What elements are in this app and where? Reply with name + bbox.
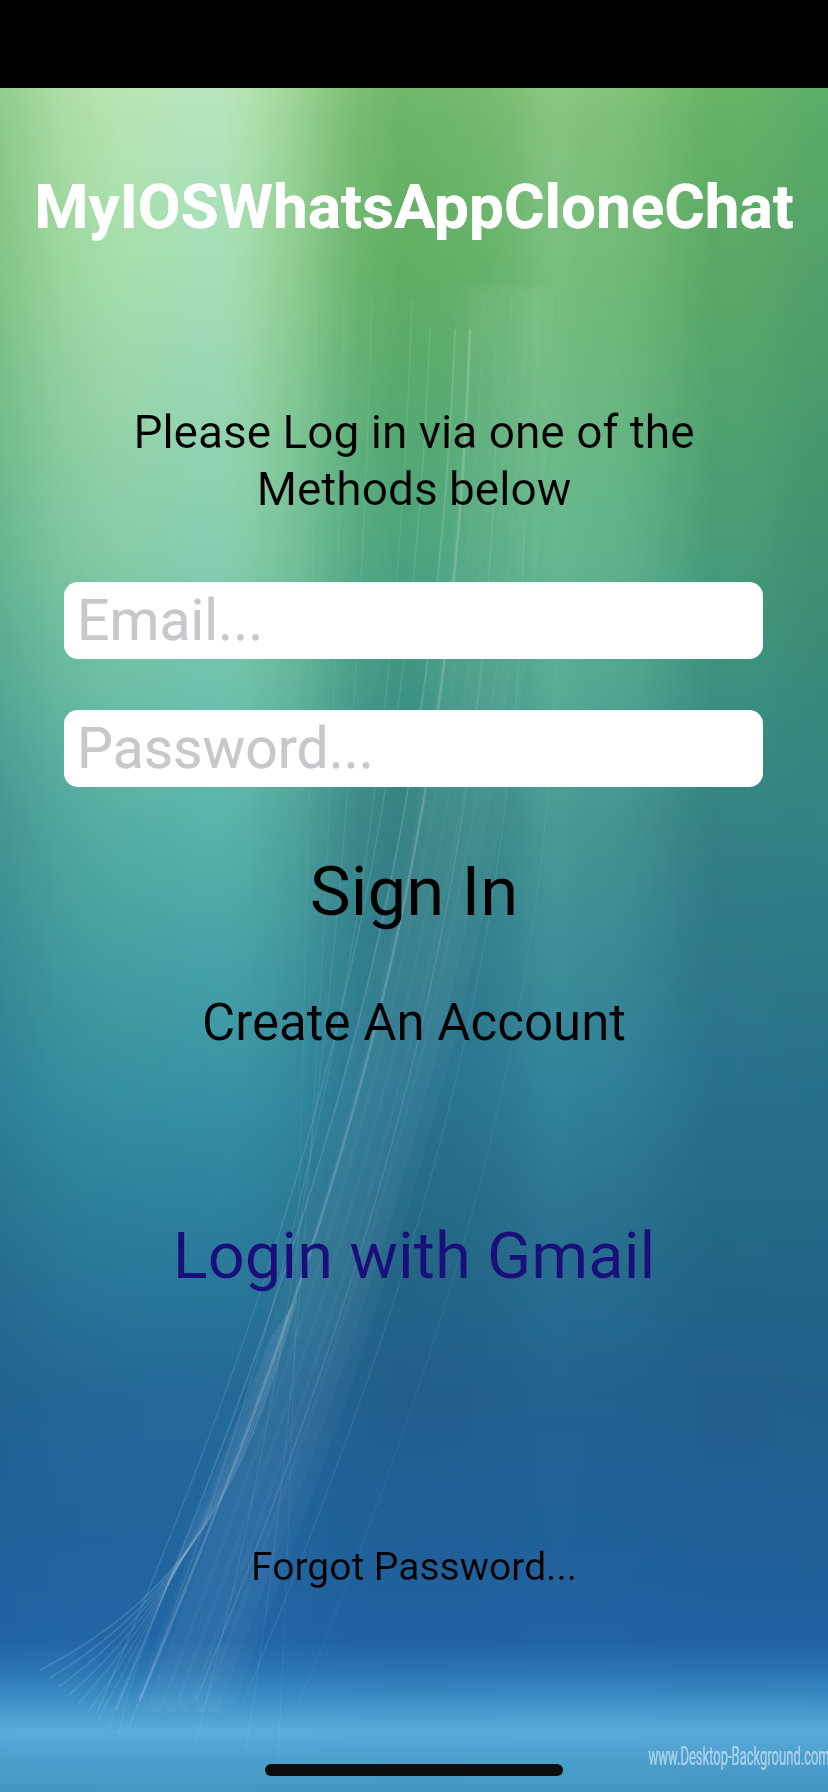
staticText: Password... (77, 715, 374, 782)
button[interactable]: Login with Gmail (0, 1218, 828, 1294)
button[interactable]: Forgot Password... (0, 1544, 828, 1590)
staticText: Please Log in via one of the Methods bel… (110, 405, 718, 516)
staticText: Email... (77, 587, 264, 654)
staticText: MyIOSWhatsAppCloneChat (0, 170, 828, 243)
staticText: www.Desktop-Background.com (648, 1741, 828, 1771)
button[interactable]: Email... (64, 582, 763, 659)
button[interactable]: Sign In (0, 851, 828, 932)
button[interactable]: Create An Account (0, 993, 828, 1053)
button[interactable]: Password... (64, 710, 763, 787)
